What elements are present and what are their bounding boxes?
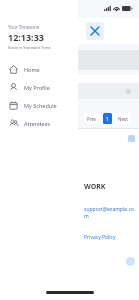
button[interactable]: My Schedule: [0, 96, 78, 114]
staticText: Next: [118, 116, 128, 122]
staticText: WORK: [84, 182, 106, 192]
button[interactable]: 1: [103, 113, 112, 124]
button[interactable]: support@example.com: [84, 206, 135, 220]
staticText: My Schedule: [24, 102, 57, 109]
button[interactable]: Privacy Policy: [84, 234, 116, 241]
staticText: Your Timezone: [8, 24, 40, 30]
button[interactable]: Prev: [84, 113, 100, 124]
staticText: Privacy Policy: [84, 234, 116, 241]
button[interactable]: Next: [115, 113, 131, 124]
button[interactable]: My Profile: [0, 78, 78, 96]
button[interactable]: Support chat: [126, 257, 135, 266]
button[interactable]: Chat: [128, 135, 135, 142]
button[interactable]: Attendees: [0, 114, 78, 132]
staticText: Prev: [87, 116, 97, 122]
staticText: My Profile: [24, 84, 50, 91]
button[interactable]: Home: [0, 60, 78, 78]
staticText: 1: [106, 116, 109, 122]
button[interactable]: Close menu: [86, 22, 104, 40]
staticText: 12:13:33: [8, 31, 44, 43]
staticText: Attendees: [24, 120, 51, 127]
staticText: support@example.com: [84, 206, 135, 220]
staticText: Eastern Standard Time: [8, 45, 51, 50]
staticText: Home: [24, 66, 40, 73]
